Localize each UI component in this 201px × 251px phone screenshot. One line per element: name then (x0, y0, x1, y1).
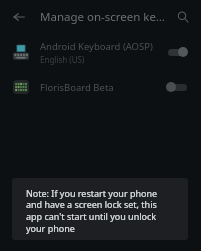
staticText: Manage on-screen keyboar… (40, 9, 167, 25)
button[interactable]: Back (6, 4, 32, 30)
button[interactable]: Search (171, 5, 195, 29)
staticText: Android Keyboard (AOSP) (40, 40, 153, 53)
staticText: Note: If you restart your phone and have… (26, 187, 174, 235)
staticText: English (US) (40, 54, 85, 65)
button[interactable]: FlorisBoard Beta (0, 76, 201, 98)
button[interactable]: On (166, 46, 188, 58)
staticText: FlorisBoard Beta (40, 81, 160, 94)
button[interactable]: Off (166, 81, 188, 93)
button[interactable]: Android Keyboard (AOSP) (0, 38, 201, 66)
